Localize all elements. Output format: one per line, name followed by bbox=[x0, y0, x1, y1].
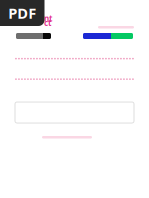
staticText: ct bbox=[44, 17, 51, 28]
staticText: nt bbox=[44, 13, 52, 24]
staticText: PDF bbox=[8, 3, 36, 23]
